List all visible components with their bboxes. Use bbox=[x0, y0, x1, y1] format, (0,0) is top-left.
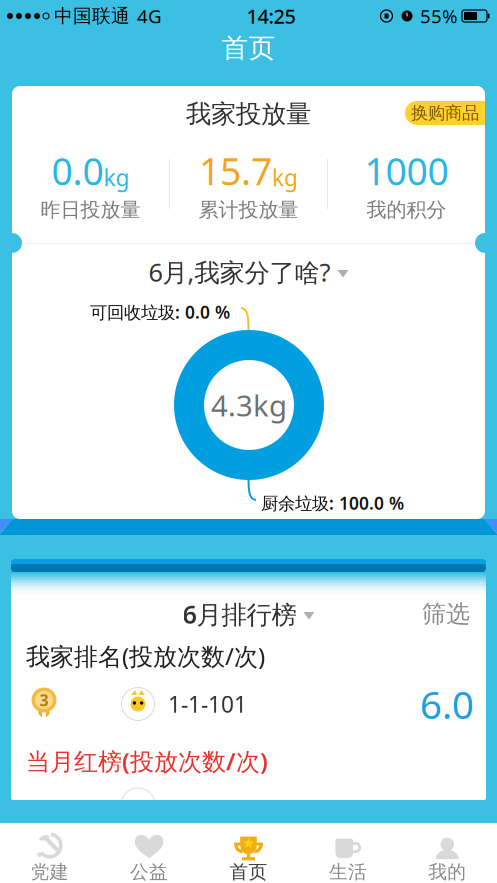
staticText: 我家投放量 bbox=[186, 98, 311, 129]
button[interactable]: 党建 bbox=[0, 823, 99, 883]
button[interactable]: 我的 bbox=[398, 823, 497, 883]
staticText: 累计投放量 bbox=[198, 197, 298, 222]
staticText: 筛选 bbox=[422, 599, 470, 629]
staticText: 首页 bbox=[229, 860, 267, 883]
button[interactable]: 首页 bbox=[199, 823, 298, 883]
button[interactable]: 换购商品 bbox=[405, 101, 485, 125]
staticText: 党建 bbox=[31, 860, 69, 883]
staticText: 生活 bbox=[329, 860, 367, 883]
staticText: 1-1-101 bbox=[168, 689, 247, 719]
staticText: 公益 bbox=[130, 860, 168, 883]
button[interactable]: 筛选 bbox=[416, 601, 476, 627]
staticText: 3 bbox=[39, 689, 48, 711]
staticText: 0.0 bbox=[51, 146, 103, 195]
staticText: 我的积分 bbox=[366, 197, 446, 222]
staticText: 55% bbox=[420, 4, 458, 28]
staticText: 可回收垃圾: 0.0 % bbox=[90, 300, 230, 323]
staticText: 15.7 bbox=[199, 146, 272, 195]
button[interactable]: 6月排行榜 bbox=[11, 601, 486, 627]
staticText: 6月排行榜 bbox=[182, 597, 296, 631]
staticText: 6.0 bbox=[420, 678, 474, 730]
staticText: 14:25 bbox=[246, 3, 295, 29]
staticText: kg bbox=[272, 162, 298, 192]
staticText: 4.3kg bbox=[211, 385, 287, 424]
button[interactable]: 生活 bbox=[298, 823, 398, 883]
staticText: 4G bbox=[137, 4, 162, 28]
staticText: 我的 bbox=[428, 860, 466, 883]
button[interactable]: 公益 bbox=[99, 823, 199, 883]
staticText: 6月,我家分了啥? bbox=[148, 255, 330, 289]
staticText: 1000 bbox=[364, 146, 448, 195]
staticText: 换购商品 bbox=[411, 102, 479, 124]
staticText: 厨余垃圾: 100.0 % bbox=[261, 491, 404, 514]
staticText: 当月红榜(投放次数/次) bbox=[26, 745, 268, 777]
staticText: 我家排名(投放次数/次) bbox=[26, 640, 265, 672]
staticText: 中国联通 bbox=[54, 4, 130, 27]
button[interactable]: 3 bbox=[11, 683, 486, 725]
staticText: 昨日投放量 bbox=[40, 197, 140, 222]
button[interactable]: 6月,我家分了啥? bbox=[12, 257, 485, 287]
staticText: 首页 bbox=[221, 32, 275, 64]
staticText: kg bbox=[103, 162, 129, 192]
